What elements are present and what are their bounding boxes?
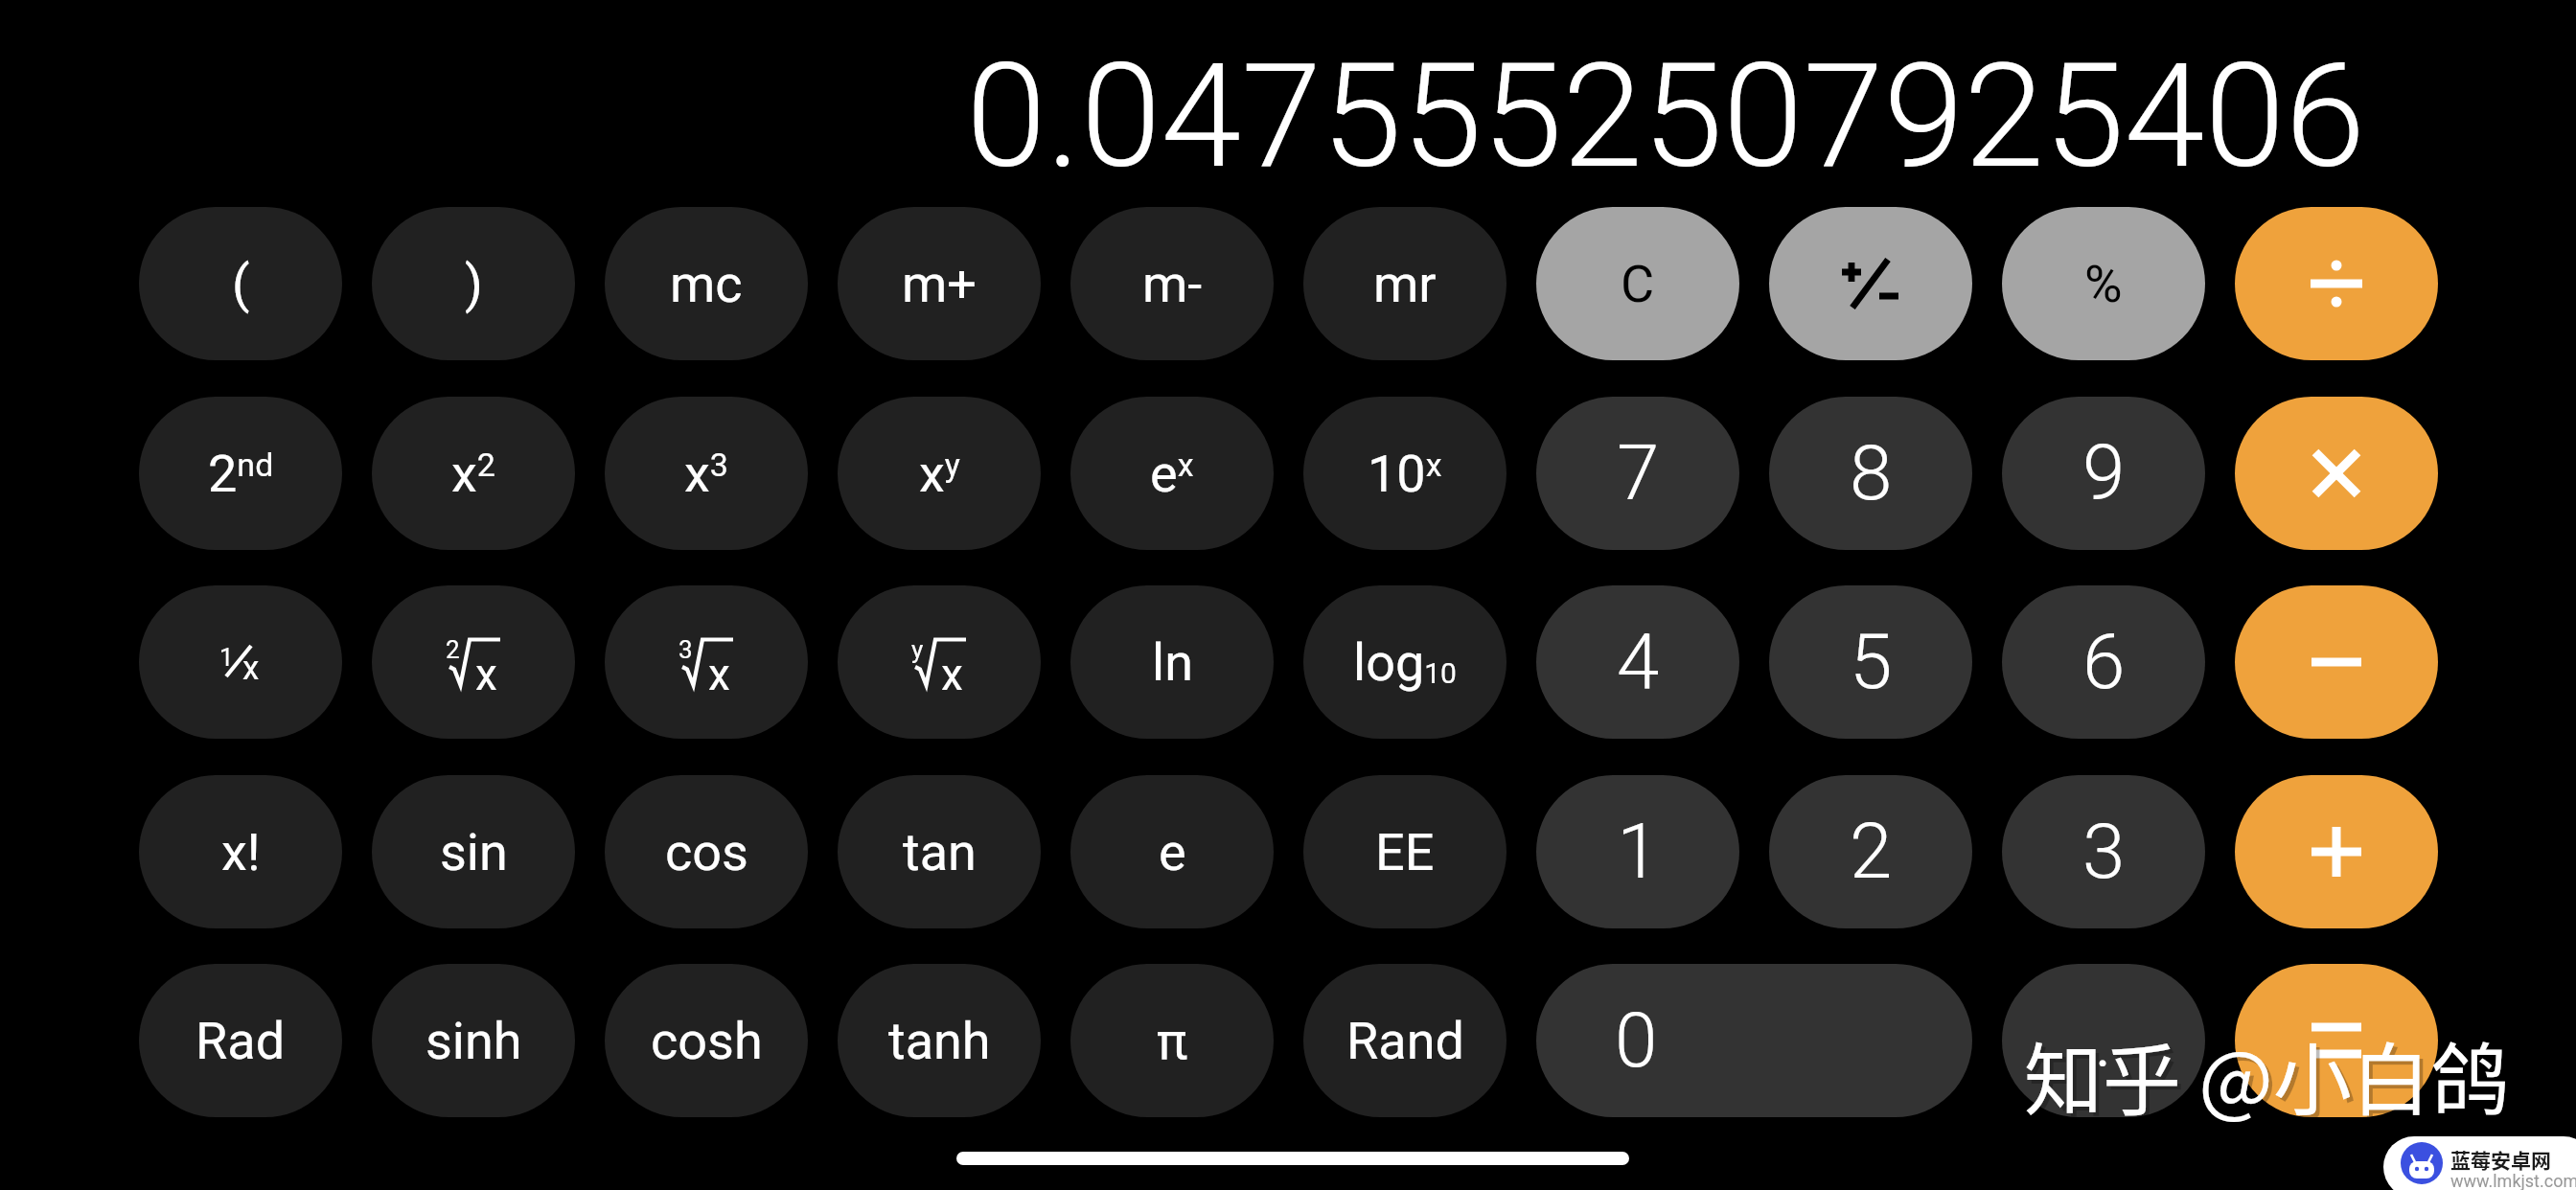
staticText: x! <box>221 822 261 882</box>
button[interactable]: 7 <box>1536 397 1739 550</box>
staticText: 5 <box>1850 617 1893 707</box>
staticText: x <box>242 649 260 681</box>
staticText: sinh <box>425 1011 522 1071</box>
staticText: 1 <box>1617 807 1660 897</box>
staticText: mc <box>670 254 743 314</box>
button[interactable]: . <box>2002 964 2205 1117</box>
staticText: m- <box>1142 254 1203 314</box>
staticText: . <box>2094 995 2113 1086</box>
button[interactable]: sinh <box>372 964 575 1117</box>
staticText: 0.0475552507925406 <box>966 32 2365 201</box>
button[interactable]: 5 <box>1769 585 1972 739</box>
button[interactable]: C <box>1536 207 1739 360</box>
button[interactable]: x2 <box>372 397 575 550</box>
button[interactable]: Rad <box>139 964 342 1117</box>
button[interactable]: mr <box>1303 207 1506 360</box>
button[interactable]: tanh <box>838 964 1041 1117</box>
staticText: x <box>475 649 497 698</box>
staticText: y <box>911 635 924 664</box>
button[interactable]: cos <box>605 775 808 928</box>
button[interactable]: m- <box>1070 207 1274 360</box>
staticText: tan <box>903 822 977 882</box>
button[interactable]: Rand <box>1303 964 1506 1117</box>
staticText: ( <box>232 254 250 314</box>
button[interactable]: 2nd <box>139 397 342 550</box>
button[interactable]: x3 <box>605 397 808 550</box>
staticText: % <box>2084 254 2123 314</box>
button[interactable]: 10x <box>1303 397 1506 550</box>
button[interactable]: root y of x <box>838 585 1041 739</box>
staticText: ) <box>465 254 483 314</box>
staticText: cos <box>665 822 748 882</box>
button[interactable]: root 3 of x <box>605 585 808 739</box>
button[interactable]: π <box>1070 964 1274 1117</box>
staticText: 9 <box>2082 428 2126 518</box>
staticText: 8 <box>1850 428 1893 518</box>
button[interactable]: ) <box>372 207 575 360</box>
button[interactable]: e <box>1070 775 1274 928</box>
staticText: 4 <box>1617 617 1660 707</box>
button[interactable]: Plus minus <box>1769 207 1972 360</box>
button[interactable]: xy <box>838 397 1041 550</box>
staticText: Rand <box>1346 1011 1464 1071</box>
button[interactable]: 2 <box>1769 775 1972 928</box>
staticText: 3 <box>678 635 693 664</box>
staticText: EE <box>1375 822 1435 882</box>
button[interactable]: sin <box>372 775 575 928</box>
button[interactable]: % <box>2002 207 2205 360</box>
button[interactable]: one over x <box>139 585 342 739</box>
button[interactable]: tan <box>838 775 1041 928</box>
staticText: x3 <box>684 444 728 504</box>
staticText: xy <box>919 444 960 504</box>
staticText: 3 <box>2082 807 2126 897</box>
staticText: 0 <box>1615 995 1658 1086</box>
staticText: C <box>1621 254 1655 314</box>
button[interactable]: Plus <box>2235 775 2438 928</box>
staticText: mr <box>1373 254 1437 314</box>
staticText: 2 <box>1850 807 1893 897</box>
staticText: π <box>1157 1011 1188 1071</box>
button[interactable]: ex <box>1070 397 1274 550</box>
button[interactable]: 0 <box>1536 964 1972 1117</box>
button[interactable]: Divide <box>2235 207 2438 360</box>
button[interactable]: mc <box>605 207 808 360</box>
staticText: 2 <box>446 635 460 664</box>
staticText: cosh <box>651 1011 763 1071</box>
button[interactable]: EE <box>1303 775 1506 928</box>
staticText: 1 <box>219 643 234 672</box>
staticText: Rad <box>195 1011 286 1071</box>
staticText: x <box>941 649 963 698</box>
button[interactable]: m+ <box>838 207 1041 360</box>
button[interactable]: x! <box>139 775 342 928</box>
staticText: ln <box>1152 632 1193 693</box>
staticText: sin <box>440 822 508 882</box>
staticText: www.lmkjst.com <box>2450 1171 2576 1190</box>
button[interactable]: 1 <box>1536 775 1739 928</box>
staticText: 蓝莓安卓网 <box>2450 1145 2551 1174</box>
button[interactable]: ln <box>1070 585 1274 739</box>
staticText: e <box>1159 822 1186 882</box>
staticText: 10x <box>1368 444 1442 504</box>
button[interactable]: 6 <box>2002 585 2205 739</box>
staticText: 2nd <box>208 444 274 504</box>
staticText: 6 <box>2082 617 2126 707</box>
button[interactable]: ( <box>139 207 342 360</box>
button[interactable]: Multiply <box>2235 397 2438 550</box>
staticText: ex <box>1150 444 1194 504</box>
button[interactable]: 8 <box>1769 397 1972 550</box>
button[interactable]: 9 <box>2002 397 2205 550</box>
button[interactable]: log10 <box>1303 585 1506 739</box>
button[interactable]: cosh <box>605 964 808 1117</box>
staticText: 7 <box>1617 428 1660 518</box>
button[interactable]: root 2 of x <box>372 585 575 739</box>
button[interactable]: Minus <box>2235 585 2438 739</box>
button[interactable]: Equals <box>2235 964 2438 1117</box>
staticText: log10 <box>1353 632 1457 693</box>
button[interactable]: 3 <box>2002 775 2205 928</box>
staticText: tanh <box>888 1011 991 1071</box>
staticText: x2 <box>451 444 495 504</box>
button[interactable]: 4 <box>1536 585 1739 739</box>
staticText: m+ <box>902 254 977 314</box>
staticText: 知乎 @小白鸽 <box>2028 1021 2513 1127</box>
staticText: x <box>708 649 730 698</box>
